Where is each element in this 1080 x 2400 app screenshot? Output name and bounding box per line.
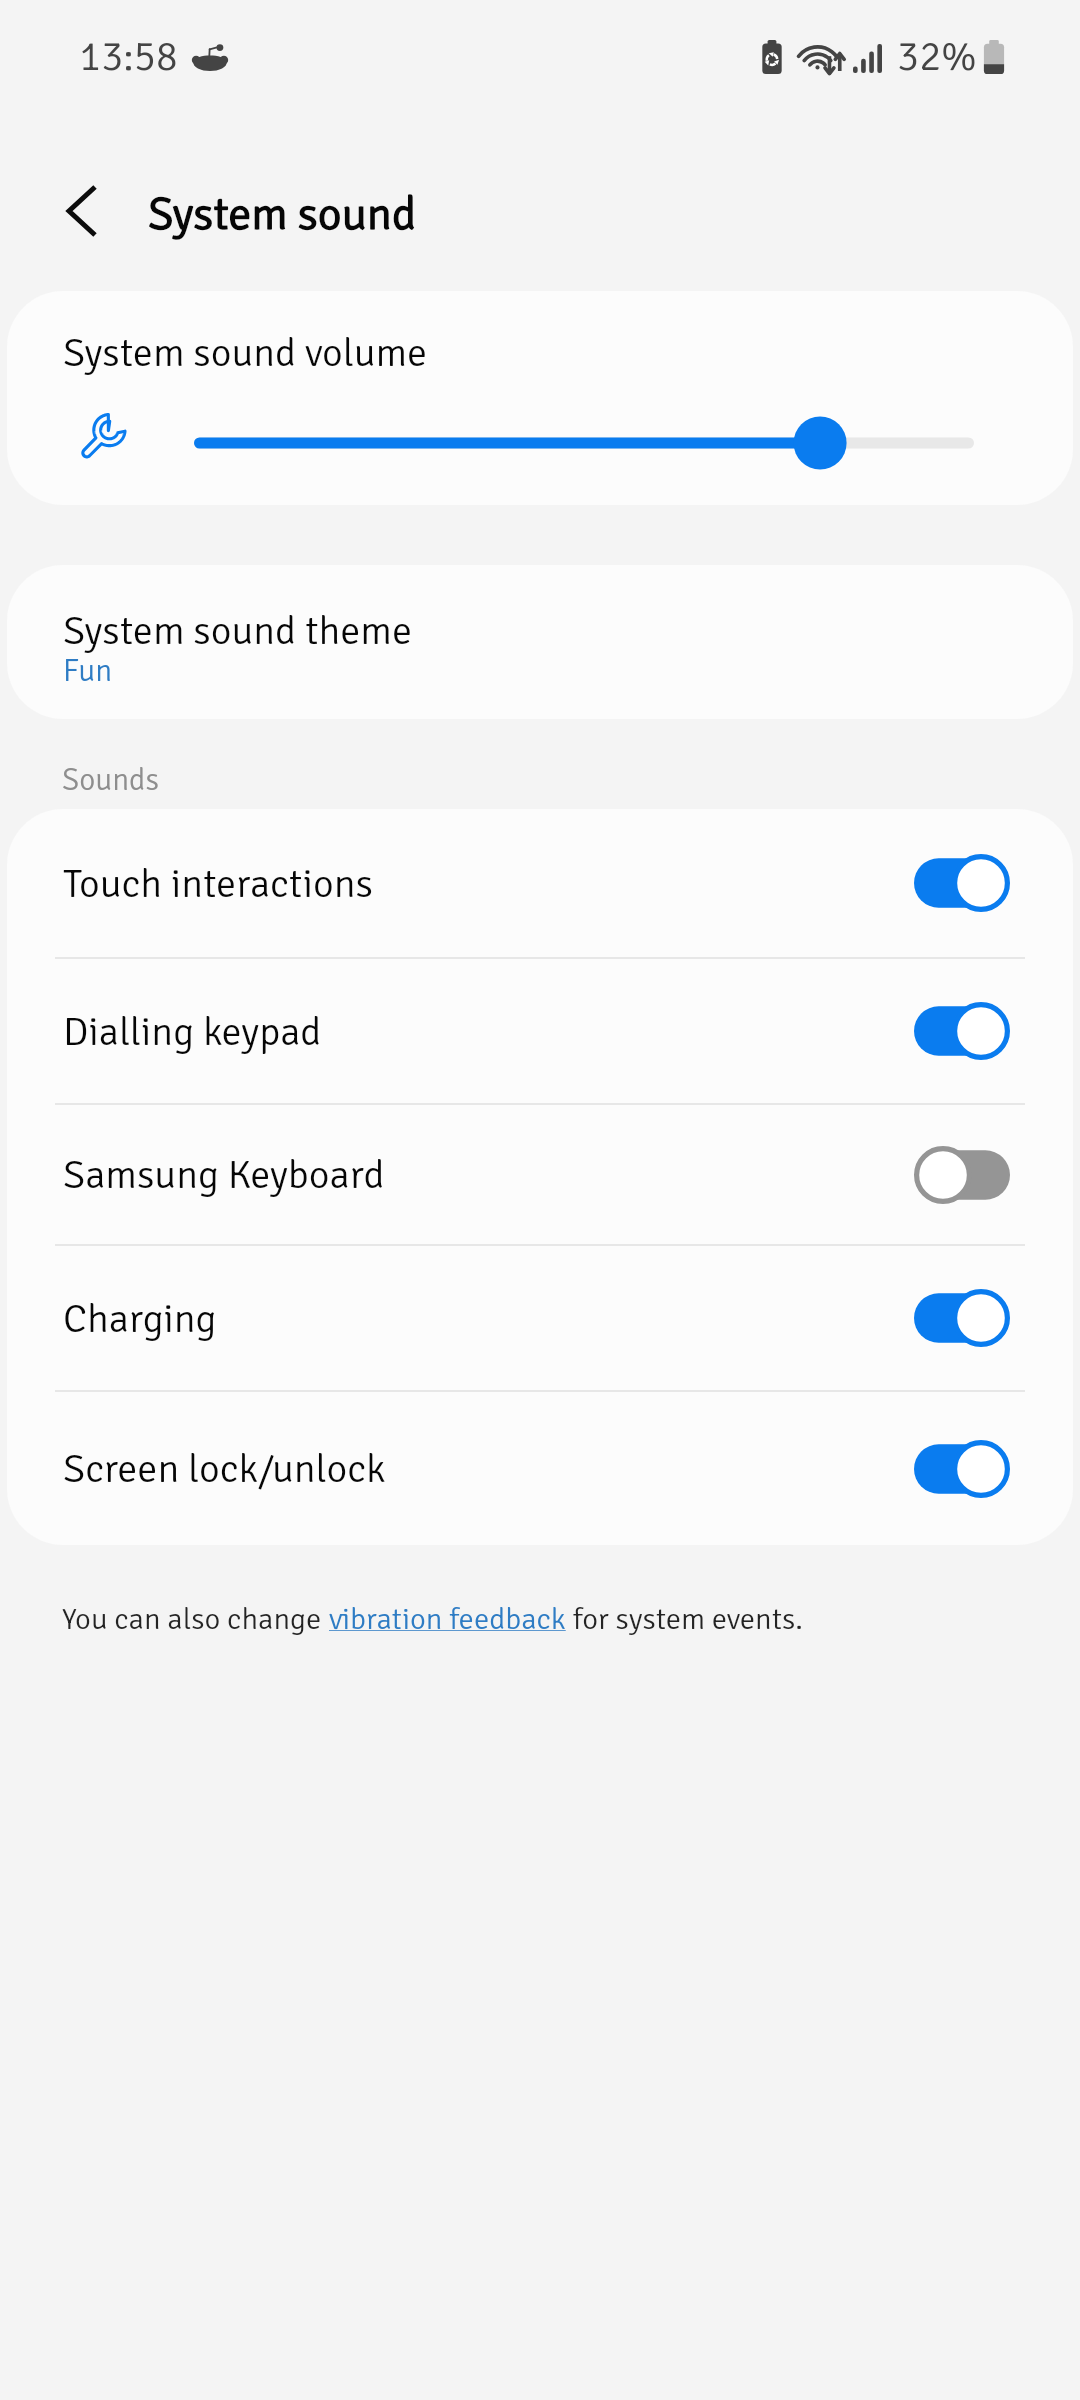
- button[interactable]: Screen lock/unlock, on: [906, 1431, 1018, 1507]
- button[interactable]: Charging, on: [906, 1280, 1018, 1356]
- button[interactable]: Samsung Keyboard: [7, 1105, 1073, 1244]
- staticText: Charging: [63, 1294, 906, 1343]
- button[interactable]: System sound theme: [7, 565, 1073, 719]
- button[interactable]: Dialling keypad: [7, 959, 1073, 1103]
- staticText: Dialling keypad: [63, 1007, 906, 1056]
- staticText: Screen lock/unlock: [63, 1444, 906, 1493]
- staticText: You can also change: [62, 1600, 329, 1638]
- staticText: System sound theme: [63, 606, 413, 655]
- staticText: Fun: [63, 652, 113, 690]
- button[interactable]: Dialling keypad, on: [906, 993, 1018, 1069]
- staticText: 13:58: [79, 31, 178, 82]
- button[interactable]: Screen lock/unlock: [7, 1392, 1073, 1545]
- staticText: System sound volume: [63, 328, 428, 377]
- staticText: Samsung Keyboard: [63, 1150, 906, 1199]
- button[interactable]: Samsung Keyboard, off: [906, 1137, 1018, 1213]
- staticText: 32%: [897, 31, 977, 82]
- button[interactable]: vibration feedback: [329, 1600, 566, 1638]
- staticText: for system events.: [566, 1600, 803, 1638]
- button[interactable]: Charging: [7, 1246, 1073, 1390]
- button[interactable]: Touch interactions: [7, 809, 1073, 957]
- staticText: Sounds: [62, 761, 159, 799]
- staticText: Touch interactions: [63, 859, 906, 908]
- button[interactable]: Back: [23, 163, 119, 259]
- button[interactable]: Touch interactions, on: [906, 845, 1018, 921]
- staticText: System sound: [148, 186, 417, 243]
